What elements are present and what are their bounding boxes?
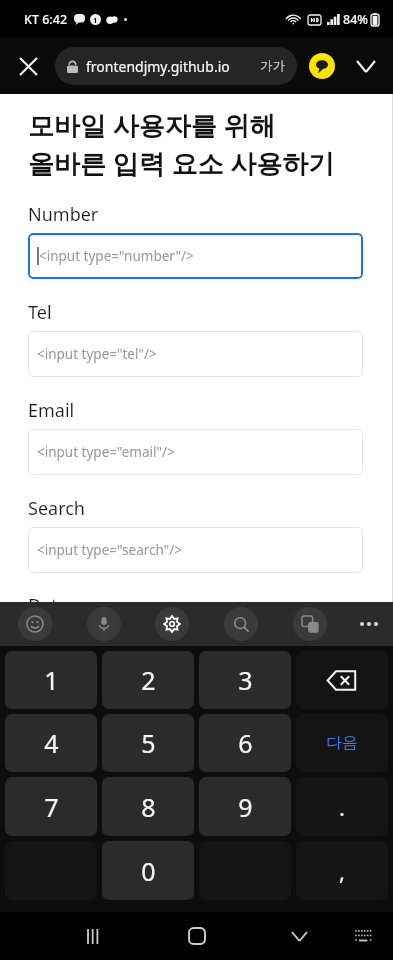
staticText: Date <box>28 593 68 602</box>
button[interactable]: 7 <box>5 777 97 836</box>
button[interactable]: Backspace <box>296 651 388 709</box>
staticText: 다음 <box>326 733 358 753</box>
button[interactable]: <input type="tel"/> <box>28 331 363 377</box>
button[interactable]: 2 <box>102 651 194 709</box>
button[interactable]: Emoji <box>18 607 52 641</box>
button[interactable]: Search <box>224 607 258 641</box>
button[interactable]: . <box>296 777 388 836</box>
button[interactable]: Voice input <box>87 607 121 641</box>
button[interactable]: Collapse <box>348 48 384 84</box>
staticText: Search <box>28 496 85 521</box>
button[interactable]: 1 <box>5 651 97 709</box>
staticText: 1 <box>44 663 59 697</box>
staticText: <input type="search"/> <box>37 541 182 559</box>
staticText: Tel <box>28 300 52 325</box>
button[interactable]: Translate <box>293 607 327 641</box>
button[interactable]: <input type="number"/> <box>28 233 363 279</box>
button[interactable]: <input type="email"/> <box>28 429 363 475</box>
staticText: 1 <box>93 15 98 25</box>
staticText: Email <box>28 398 75 423</box>
button[interactable]: 8 <box>102 777 194 836</box>
button[interactable]: 4 <box>5 714 97 772</box>
button[interactable]: Change keyboard <box>341 914 385 958</box>
staticText: 3 <box>238 663 253 697</box>
staticText: 84% <box>343 11 368 28</box>
staticText: 모바일 사용자를 위해 <box>28 107 276 143</box>
button[interactable]: Recents <box>70 912 118 960</box>
button[interactable]: , <box>296 841 388 900</box>
button[interactable]: <input type="search"/> <box>28 527 363 573</box>
button[interactable]: Close <box>10 48 46 84</box>
button[interactable]: Hide keyboard <box>275 912 323 960</box>
staticText: . <box>339 792 345 822</box>
button[interactable]: 9 <box>199 777 291 836</box>
button[interactable]: 3 <box>199 651 291 709</box>
staticText: 6 <box>238 726 253 760</box>
staticText: 0 <box>141 854 156 888</box>
staticText: 4 <box>44 726 59 760</box>
staticText: <input type="number"/> <box>39 247 194 265</box>
button[interactable]: 다음 <box>296 714 388 772</box>
staticText: 8 <box>141 790 156 824</box>
staticText: 7 <box>44 790 59 824</box>
button[interactable]: 0 <box>102 841 194 900</box>
staticText: 올바른 입력 요소 사용하기 <box>28 145 335 181</box>
button[interactable]: 6 <box>199 714 291 772</box>
staticText: Number <box>28 202 99 227</box>
staticText: , <box>339 856 345 886</box>
staticText: frontendjmy.github.io <box>86 57 230 76</box>
staticText: <input type="tel"/> <box>37 345 157 363</box>
staticText: <input type="email"/> <box>37 443 175 461</box>
staticText: 9 <box>238 790 253 824</box>
staticText: 2 <box>141 663 156 697</box>
button[interactable]: Settings <box>155 607 189 641</box>
button[interactable]: frontendjmy.github.io <box>55 47 297 85</box>
staticText: KT 6:42 <box>24 11 68 28</box>
staticText: 5 <box>141 726 156 760</box>
button[interactable]: 5 <box>102 714 194 772</box>
button[interactable]: Kakao <box>307 51 337 81</box>
button[interactable]: More options <box>352 607 386 641</box>
button[interactable]: Home <box>173 912 221 960</box>
staticText: 가가 <box>260 58 285 74</box>
